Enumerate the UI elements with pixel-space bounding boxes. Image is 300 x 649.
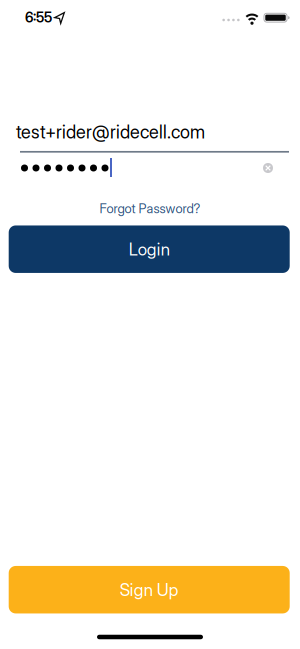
staticText: Forgot Password?	[99, 201, 200, 216]
button[interactable]: Sign Up	[9, 566, 290, 613]
button[interactable]: Clear text	[259, 159, 277, 177]
staticText: Login	[129, 239, 170, 259]
staticText: 6:55	[25, 9, 52, 26]
staticText: test+rider@ridecell.com	[16, 121, 205, 143]
button[interactable]: Forgot Password?	[99, 201, 200, 216]
button[interactable]: Login	[9, 225, 290, 273]
staticText: Sign Up	[120, 580, 179, 600]
